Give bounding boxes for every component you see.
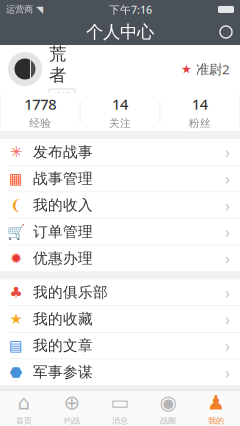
staticText: ▦ (9, 170, 23, 187)
staticText: 编辑资料 (53, 91, 71, 114)
staticText: 军事参谋 (33, 363, 93, 381)
button[interactable]: ★ (181, 60, 240, 78)
staticText: 发布战事 (33, 143, 93, 161)
staticText: 14 (112, 94, 128, 114)
staticText: › (225, 168, 230, 189)
button[interactable]: ✹ (0, 245, 240, 271)
button[interactable]: 🛒 (0, 219, 240, 245)
button[interactable]: ❨ (0, 192, 240, 218)
staticText: 运营商 (6, 4, 33, 15)
button[interactable]: ⊕ (48, 391, 96, 426)
button[interactable]: ▦ (0, 166, 240, 192)
staticText: ★ (9, 311, 22, 327)
staticText: 我的 (208, 416, 224, 426)
staticText: 首页 (16, 416, 32, 426)
button[interactable]: ⬣ (0, 359, 240, 385)
staticText: ⊕ (63, 391, 80, 414)
button[interactable]: ▤ (0, 333, 240, 359)
staticText: ▭ (110, 391, 129, 414)
button[interactable]: ♟ (192, 391, 240, 426)
staticText: 消息 (112, 416, 128, 426)
staticText: 战圈 (160, 416, 176, 426)
staticText: 14 (192, 94, 208, 114)
staticText: ♣ (9, 284, 22, 301)
staticText: ♟ (207, 391, 225, 414)
button[interactable]: ▭ (96, 391, 144, 426)
staticText: 粉丝 (189, 117, 211, 130)
staticText: 约战 (64, 416, 80, 426)
staticText: ◉ (159, 391, 176, 414)
staticText: ✹ (10, 250, 22, 267)
staticText: 个人中心 (86, 21, 154, 43)
staticText: 经验 (29, 117, 51, 130)
staticText: › (225, 141, 230, 163)
button[interactable]: 14 (160, 93, 239, 131)
staticText: ▤ (9, 337, 23, 354)
staticText: › (225, 308, 230, 330)
button[interactable]: ✳ (0, 139, 240, 165)
staticText: ★ (181, 62, 192, 76)
button[interactable]: 14 (80, 93, 159, 131)
staticText: › (225, 248, 230, 269)
staticText: 我的收藏 (33, 310, 93, 328)
staticText: 准尉2 (196, 60, 230, 78)
button[interactable]: 设置 (212, 19, 240, 45)
staticText: 下午7:16 (109, 2, 152, 17)
staticText: › (225, 362, 230, 383)
button[interactable]: 1778 (1, 93, 80, 131)
button[interactable]: ★ (0, 306, 240, 332)
staticText: ◥ (36, 4, 43, 15)
staticText: 我的收入 (33, 196, 93, 214)
staticText: 订单管理 (33, 223, 93, 241)
staticText: 🛒 (7, 223, 25, 240)
staticText: ⌂ (17, 391, 30, 414)
staticText: ❨ (10, 197, 22, 213)
staticText: › (225, 221, 230, 242)
button[interactable]: 开荒者 (0, 22, 90, 116)
staticText: › (225, 335, 230, 356)
button[interactable]: ⌂ (0, 391, 48, 426)
button[interactable]: ◉ (144, 391, 192, 426)
staticText: 1778 (24, 94, 56, 114)
staticText: 优惠办理 (33, 249, 93, 267)
staticText: 开荒者 (49, 22, 66, 86)
staticText: 战事管理 (33, 170, 93, 188)
staticText: 关注 (109, 117, 131, 130)
staticText: ⬣ (9, 364, 22, 380)
button[interactable]: ♣ (0, 279, 240, 305)
staticText: › (225, 282, 230, 303)
staticText: 我的文章 (33, 337, 93, 355)
staticText: › (225, 195, 230, 216)
staticText: 我的俱乐部 (33, 283, 108, 301)
staticText: ✳ (10, 144, 22, 160)
